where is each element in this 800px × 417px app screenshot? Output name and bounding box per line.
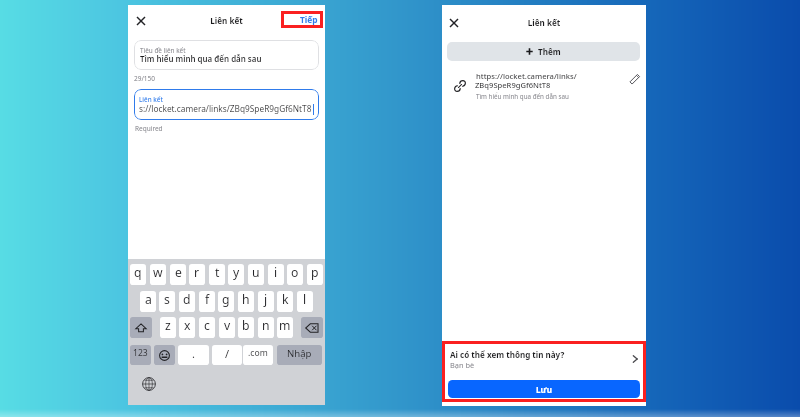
staticText: Nhập <box>287 347 312 360</box>
button[interactable]: p <box>307 264 323 285</box>
staticText: 123 <box>133 347 148 359</box>
staticText: q <box>134 264 142 281</box>
staticText: Bạn bè <box>450 360 475 370</box>
staticText: https://locket.camera/links/ <box>476 71 577 81</box>
button[interactable]: Tiếp <box>281 11 323 28</box>
staticText: z <box>165 317 171 334</box>
staticText: Thêm <box>538 46 561 57</box>
staticText: i <box>274 264 278 281</box>
staticText: Tìm hiểu mình qua đến dẫn sau <box>476 92 569 101</box>
button[interactable]: Backspace <box>301 317 323 338</box>
button[interactable]: d <box>179 291 195 312</box>
button[interactable]: f <box>199 291 215 312</box>
staticText: v <box>224 317 231 334</box>
staticText: f <box>205 291 210 308</box>
button[interactable]: Ai có thể xem thông tin này? <box>448 345 640 373</box>
staticText: h <box>242 291 250 308</box>
staticText: s://locket.camera/links/ZBq9SpeR9gGf6NtT… <box>139 103 312 114</box>
staticText: k <box>282 291 289 308</box>
staticText: e <box>175 264 182 281</box>
button[interactable]: x <box>179 317 195 338</box>
button[interactable]: / <box>212 345 242 365</box>
button[interactable]: o <box>287 264 303 285</box>
staticText: m <box>279 317 291 334</box>
staticText: d <box>183 291 191 308</box>
button[interactable]: .com <box>243 345 273 365</box>
staticText: u <box>252 264 260 281</box>
button[interactable]: Tiêu đề liên kết <box>134 40 319 70</box>
staticText: s <box>164 291 170 308</box>
button[interactable]: a <box>140 291 156 312</box>
button[interactable]: Edit <box>628 72 641 85</box>
staticText: Liên kết <box>442 17 646 28</box>
button[interactable]: g <box>218 291 234 312</box>
button[interactable]: y <box>228 264 244 285</box>
button[interactable]: c <box>199 317 215 338</box>
button[interactable]: k <box>277 291 293 312</box>
button[interactable]: m <box>277 317 293 338</box>
staticText: Tiêu đề liên kết <box>140 46 186 55</box>
staticText: Required <box>135 124 163 133</box>
button[interactable]: z <box>160 317 176 338</box>
staticText: o <box>291 264 299 281</box>
button[interactable]: s <box>159 291 175 312</box>
staticText: a <box>145 291 152 308</box>
button[interactable]: . <box>178 345 209 365</box>
button[interactable]: Close <box>134 14 148 28</box>
button[interactable]: i <box>268 264 284 285</box>
staticText: l <box>303 291 307 308</box>
button[interactable]: Change language <box>142 377 156 391</box>
staticText: r <box>194 264 200 281</box>
button[interactable]: n <box>258 317 274 338</box>
button[interactable]: q <box>130 264 146 285</box>
staticText: x <box>184 317 191 334</box>
button[interactable]: Shift <box>130 317 152 338</box>
button[interactable]: t <box>209 264 225 285</box>
button[interactable]: b <box>238 317 254 338</box>
button[interactable]: h <box>238 291 254 312</box>
button[interactable]: j <box>258 291 274 312</box>
staticText: Tìm hiểu mình qua đến dẫn sau <box>140 54 262 65</box>
staticText: g <box>222 291 230 308</box>
staticText: / <box>225 346 230 361</box>
button[interactable]: Lưu <box>448 380 640 398</box>
button[interactable]: Nhập <box>277 345 322 365</box>
button[interactable]: w <box>150 264 166 285</box>
staticText: y <box>233 264 240 281</box>
staticText: Lưu <box>536 384 552 395</box>
staticText: p <box>311 264 319 281</box>
staticText: Tiếp <box>300 14 318 25</box>
staticText: Ai có thể xem thông tin này? <box>450 349 565 360</box>
staticText: b <box>242 317 250 334</box>
staticText: .com <box>248 347 268 359</box>
staticText: 29/150 <box>134 74 156 83</box>
button[interactable]: e <box>170 264 186 285</box>
button[interactable]: l <box>297 291 313 312</box>
staticText: j <box>264 291 268 308</box>
button[interactable]: Close <box>447 16 461 30</box>
staticText: ZBq9SpeR9gGf6NtT8 <box>475 80 551 90</box>
button[interactable]: https://locket.camera/links/ <box>442 68 646 104</box>
staticText: Liên kết <box>139 95 163 104</box>
staticText: . <box>192 346 195 361</box>
staticText: n <box>262 317 270 334</box>
button[interactable]: Liên kết <box>134 89 319 120</box>
button[interactable]: u <box>248 264 264 285</box>
button[interactable]: Emoji <box>154 345 175 365</box>
button[interactable]: r <box>189 264 205 285</box>
button[interactable]: Thêm <box>447 42 640 61</box>
button[interactable]: 123 <box>130 345 151 365</box>
button[interactable]: v <box>219 317 235 338</box>
staticText: t <box>215 264 220 281</box>
staticText: Liên kết <box>128 15 325 26</box>
staticText: c <box>204 317 210 334</box>
staticText: w <box>153 264 163 281</box>
